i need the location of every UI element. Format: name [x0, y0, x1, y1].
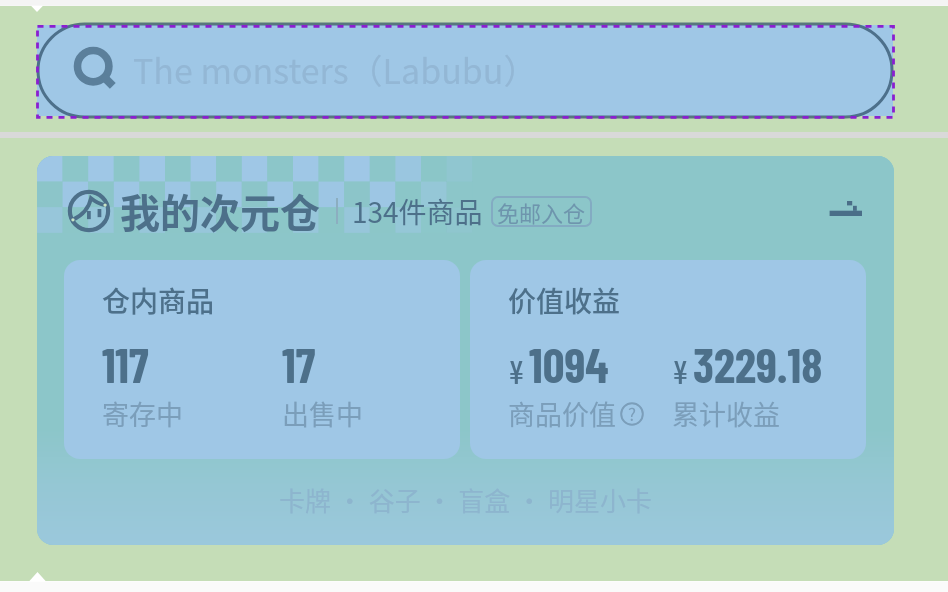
staticText: 寄存中 — [102, 394, 183, 433]
button[interactable]: 仓内商品 — [64, 260, 460, 459]
staticText: 仓内商品 — [102, 280, 215, 321]
staticText: ¥ — [672, 352, 689, 390]
button[interactable]: Manage — [821, 188, 869, 236]
staticText: 商品价值 — [508, 394, 616, 433]
staticText: 3229.18 — [693, 335, 823, 393]
staticText: 17 — [282, 335, 316, 393]
staticText: 我的次元仓 — [120, 182, 320, 240]
other: Search — [74, 43, 130, 99]
staticText: The monsters（Labubu） — [133, 45, 538, 94]
button[interactable]: Warehouse — [37, 156, 894, 545]
other: Warehouse — [67, 189, 111, 233]
staticText: 134件商品 — [352, 191, 483, 232]
staticText: 1094 — [529, 335, 609, 393]
staticText: 累计收益 — [672, 394, 780, 433]
staticText: 出售中 — [282, 394, 363, 433]
button[interactable]: Search — [37, 25, 893, 116]
staticText: 卡牌 · 谷子 · 盲盒 · 明星小卡 — [37, 481, 894, 519]
staticText: ¥ — [508, 352, 525, 390]
button[interactable]: 价值收益 — [470, 260, 866, 459]
staticText: 免邮入仓 — [497, 196, 586, 227]
staticText: 价值收益 — [508, 280, 621, 321]
staticText: 117 — [102, 335, 149, 393]
staticText: ? — [628, 401, 637, 425]
